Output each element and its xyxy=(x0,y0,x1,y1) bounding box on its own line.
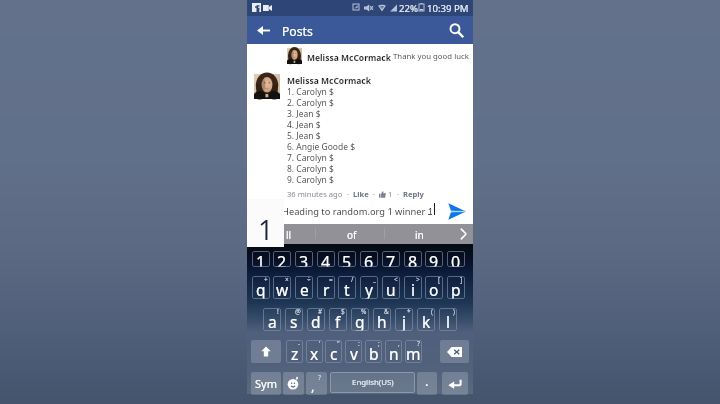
staticText: j xyxy=(402,311,406,331)
staticText: 1 xyxy=(258,211,274,248)
staticText: u xyxy=(386,279,396,299)
staticText: ? xyxy=(417,340,420,348)
button[interactable]: & xyxy=(373,308,391,331)
staticText: < xyxy=(394,276,398,284)
staticText: i xyxy=(411,279,415,299)
button[interactable]: Back xyxy=(248,16,276,44)
button[interactable]: 0 xyxy=(447,251,465,267)
button[interactable]: ( xyxy=(417,308,435,331)
button[interactable]: ; xyxy=(365,340,382,363)
button[interactable]: Emoji xyxy=(283,372,304,395)
button[interactable]: Space xyxy=(330,372,415,393)
staticText: y xyxy=(365,279,373,299)
staticText: 22% xyxy=(399,2,418,15)
staticText: · xyxy=(369,189,379,199)
button[interactable]: Shift xyxy=(251,340,281,363)
button[interactable]: × xyxy=(273,276,291,299)
button[interactable]: Search xyxy=(442,16,470,44)
button[interactable]: _ xyxy=(360,276,378,299)
staticText: Thank you good luck xyxy=(393,51,469,62)
staticText: 6 xyxy=(364,251,374,267)
staticText: h xyxy=(377,311,387,331)
staticText: v xyxy=(350,343,358,363)
staticText: : xyxy=(358,340,360,348)
staticText: , xyxy=(311,377,315,395)
staticText: d xyxy=(311,311,321,331)
button[interactable]: 5 xyxy=(338,251,356,267)
staticText: 1. Carolyn $ 2. Carolyn $ 3. Jean $ 4. J… xyxy=(287,86,356,185)
staticText: & xyxy=(384,308,389,316)
staticText: a xyxy=(268,311,277,331)
staticText: " xyxy=(337,340,340,348)
button[interactable]: 4 xyxy=(317,251,335,267)
button[interactable]: 6 xyxy=(360,251,378,267)
button[interactable]: Send xyxy=(443,199,470,224)
button[interactable]: 3 xyxy=(295,251,313,267)
staticText: o xyxy=(429,279,439,299)
staticText: @ xyxy=(295,308,301,316)
staticText: $ xyxy=(341,308,345,316)
button[interactable]: Period xyxy=(417,372,437,395)
staticText: Posts xyxy=(282,23,313,40)
staticText: Reply xyxy=(403,189,424,199)
button[interactable]: % xyxy=(351,308,369,331)
staticText: × xyxy=(285,276,289,284)
button[interactable]: Enter xyxy=(442,372,468,395)
button[interactable]: 1 xyxy=(252,251,270,267)
staticText: Melissa McCormack xyxy=(287,75,372,87)
button[interactable]: ! xyxy=(263,308,281,331)
button[interactable]: * xyxy=(395,308,413,331)
staticText: e xyxy=(300,279,309,299)
staticText: 8 xyxy=(408,251,418,267)
staticText: Heading to random.org 1 winner 1 xyxy=(282,205,434,218)
button[interactable]: More suggestions xyxy=(454,224,473,244)
staticText: m xyxy=(406,343,421,363)
staticText: 0 xyxy=(451,251,461,267)
staticText: f xyxy=(335,311,341,331)
button[interactable]: ) xyxy=(439,308,457,331)
button[interactable]: Symbols xyxy=(251,372,281,395)
button[interactable]: : xyxy=(345,340,362,363)
staticText: · xyxy=(343,189,353,199)
staticText: w xyxy=(276,279,289,299)
button[interactable]: [ xyxy=(425,276,443,299)
staticText: * xyxy=(407,308,411,316)
staticText: / xyxy=(351,276,354,284)
staticText: 7 xyxy=(386,251,396,267)
button[interactable]: + xyxy=(252,276,270,299)
button[interactable]: ' xyxy=(306,340,323,363)
button[interactable]: 9 xyxy=(425,251,443,267)
button[interactable]: Comma xyxy=(306,372,327,395)
staticText: in xyxy=(415,228,424,242)
button[interactable]: , xyxy=(385,340,402,363)
staticText: 3 xyxy=(299,251,309,267)
button[interactable]: < xyxy=(382,276,400,299)
button[interactable]: 8 xyxy=(404,251,422,267)
staticText: g xyxy=(355,311,365,331)
staticText: # xyxy=(318,308,323,316)
button[interactable]: " xyxy=(325,340,342,363)
button[interactable]: 2 xyxy=(273,251,291,267)
staticText: n xyxy=(389,343,399,363)
staticText: Sym xyxy=(255,376,277,391)
button[interactable]: # xyxy=(307,308,325,331)
button[interactable]: - xyxy=(286,340,303,363)
staticText: 36 minutes ago xyxy=(287,189,343,199)
button[interactable]: 7 xyxy=(382,251,400,267)
button[interactable]: @ xyxy=(285,308,303,331)
staticText: r xyxy=(323,279,330,299)
button[interactable]: ? xyxy=(405,340,422,363)
staticText: ; xyxy=(378,340,380,348)
button[interactable]: Backspace xyxy=(440,340,469,363)
staticText: English(US) xyxy=(352,377,394,388)
button[interactable]: ] xyxy=(447,276,465,299)
button[interactable]: $ xyxy=(329,308,347,331)
button[interactable]: ÷ xyxy=(295,276,313,299)
staticText: of xyxy=(347,228,357,242)
button[interactable]: = xyxy=(317,276,335,299)
staticText: Melissa McCormack xyxy=(307,52,392,64)
staticText: s xyxy=(290,311,298,331)
button[interactable]: / xyxy=(338,276,356,299)
button[interactable]: > xyxy=(404,276,422,299)
staticText: 1 xyxy=(256,251,266,267)
